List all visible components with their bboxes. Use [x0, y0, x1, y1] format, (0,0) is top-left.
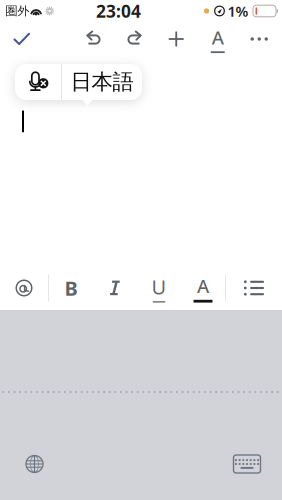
button[interactable]: Stop dictation: [15, 64, 61, 100]
button[interactable]: Redo: [114, 22, 155, 56]
button[interactable]: Italic: [93, 270, 137, 306]
button[interactable]: Undo: [72, 22, 114, 56]
staticText: B: [64, 275, 77, 301]
button[interactable]: Hide keyboard: [224, 443, 270, 485]
button[interactable]: Underline: [137, 270, 181, 306]
button[interactable]: Insert: [155, 22, 197, 56]
staticText: 日本語: [70, 69, 133, 95]
staticText: 1%: [227, 1, 248, 21]
staticText: 23:04: [96, 0, 141, 22]
button[interactable]: Text colour: [181, 270, 225, 306]
button[interactable]: Done: [0, 22, 44, 56]
button[interactable]: Mention: [0, 270, 48, 306]
staticText: A: [212, 25, 224, 50]
staticText: U: [151, 273, 166, 300]
staticText: 圏外: [5, 4, 29, 18]
button[interactable]: Text format: [197, 22, 238, 56]
button[interactable]: Bold: [49, 270, 93, 306]
button[interactable]: Bulleted list: [230, 270, 278, 306]
button[interactable]: 日本語: [62, 64, 142, 100]
staticText: A: [197, 273, 209, 298]
button[interactable]: Next keyboard: [11, 443, 57, 485]
button[interactable]: More: [238, 22, 280, 56]
